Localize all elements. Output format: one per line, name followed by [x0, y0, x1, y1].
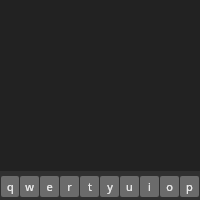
- button[interactable]: o: [160, 176, 179, 197]
- staticText: r: [67, 179, 72, 194]
- staticText: u: [126, 179, 133, 194]
- staticText: p: [186, 179, 193, 194]
- button[interactable]: q: [1, 176, 19, 197]
- staticText: y: [107, 179, 113, 194]
- button[interactable]: t: [80, 176, 99, 197]
- button[interactable]: e: [40, 176, 59, 197]
- button[interactable]: w: [20, 176, 39, 197]
- button[interactable]: r: [60, 176, 79, 197]
- staticText: w: [25, 179, 34, 194]
- staticText: e: [46, 179, 53, 194]
- staticText: t: [88, 179, 92, 194]
- button[interactable]: i: [140, 176, 159, 197]
- staticText: o: [166, 179, 173, 194]
- staticText: q: [7, 179, 14, 194]
- button[interactable]: p: [180, 176, 199, 197]
- staticText: i: [148, 179, 151, 194]
- button[interactable]: u: [120, 176, 139, 197]
- button[interactable]: y: [100, 176, 119, 197]
